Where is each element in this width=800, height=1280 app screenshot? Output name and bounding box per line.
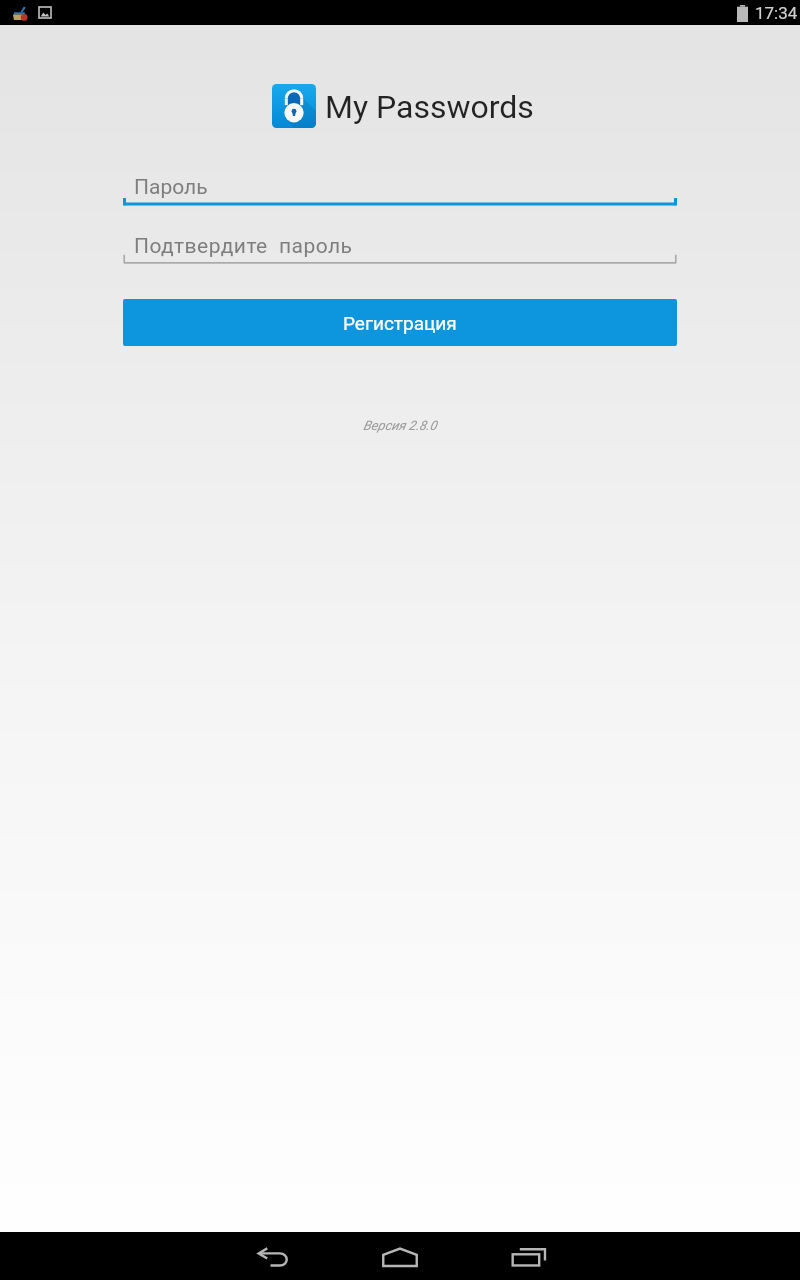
staticText: Версия 2.8.0 xyxy=(363,418,437,433)
staticText: Подтвердите пароль xyxy=(134,234,353,259)
staticText: 17:34 xyxy=(755,3,798,23)
staticText: My Passwords xyxy=(325,88,534,126)
button[interactable]: Пароль xyxy=(123,168,677,208)
button[interactable]: Back xyxy=(226,1232,322,1280)
staticText: Регистрация xyxy=(343,312,457,334)
button[interactable]: Подтвердите пароль xyxy=(123,227,677,264)
staticText: Пароль xyxy=(134,175,208,200)
button[interactable]: Home xyxy=(352,1232,448,1280)
button[interactable]: Recent apps xyxy=(481,1232,577,1280)
button[interactable]: Регистрация xyxy=(123,299,677,346)
